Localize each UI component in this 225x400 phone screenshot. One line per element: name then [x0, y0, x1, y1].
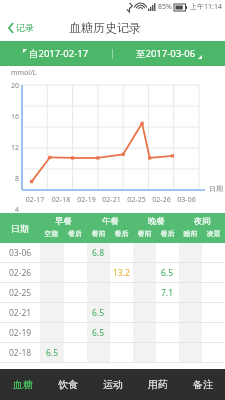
- staticText: 02-26: [9, 267, 32, 279]
- staticText: 餐前: [87, 229, 110, 238]
- staticText: 睡前: [179, 229, 202, 238]
- staticText: 02-21: [9, 307, 32, 319]
- button[interactable]: 03-06: [0, 243, 225, 262]
- staticText: 6.8: [92, 247, 105, 259]
- button[interactable]: 血糖: [0, 369, 45, 400]
- staticText: 20: [7, 81, 19, 91]
- staticText: 4: [7, 205, 19, 215]
- staticText: 0: [7, 236, 19, 246]
- button[interactable]: 02-18: [0, 343, 225, 362]
- staticText: 16: [7, 112, 19, 122]
- staticText: 空腹: [40, 229, 63, 238]
- staticText: mmol/L: [11, 68, 37, 78]
- staticText: 用药: [148, 378, 168, 391]
- staticText: 午餐: [102, 216, 119, 227]
- staticText: 12: [7, 143, 19, 153]
- staticText: 03-06: [9, 247, 32, 259]
- staticText: 02-19: [74, 195, 99, 205]
- button[interactable]: 自2017-02-17: [0, 41, 112, 66]
- staticText: 7.1: [161, 287, 174, 299]
- staticText: 日期: [209, 184, 223, 193]
- staticText: 餐前: [133, 229, 156, 238]
- staticText: 日期: [11, 223, 29, 234]
- staticText: 备注: [193, 378, 213, 391]
- staticText: 02-17: [22, 195, 48, 205]
- staticText: 6.5: [92, 307, 105, 319]
- button[interactable]: 02-25: [0, 283, 225, 302]
- staticText: 夜间: [194, 216, 211, 227]
- staticText: 02-26: [149, 195, 174, 205]
- staticText: 02-18: [48, 195, 74, 205]
- button[interactable]: 用药: [135, 369, 180, 400]
- button[interactable]: 02-26: [0, 263, 225, 282]
- staticText: 凌晨: [202, 229, 225, 238]
- staticText: 运动: [103, 378, 123, 391]
- staticText: 85%: [158, 2, 172, 12]
- staticText: 13.2: [113, 267, 130, 279]
- staticText: 上午11:14: [190, 2, 222, 12]
- staticText: 02-21: [99, 195, 124, 205]
- button[interactable]: 02-21: [0, 303, 225, 322]
- staticText: 饮食: [58, 378, 78, 391]
- staticText: 02-25: [124, 195, 149, 205]
- staticText: 餐后: [110, 229, 133, 238]
- staticText: 至2017-03-06: [136, 47, 196, 60]
- staticText: 6.5: [161, 267, 174, 279]
- staticText: 6.5: [92, 327, 105, 339]
- button[interactable]: 至2017-03-06: [113, 41, 225, 66]
- staticText: 03-06: [174, 195, 199, 205]
- staticText: 02-19: [9, 327, 32, 339]
- staticText: 餐后: [63, 229, 87, 238]
- staticText: 晚餐: [148, 216, 165, 227]
- staticText: 02-18: [9, 347, 32, 359]
- staticText: 记录: [16, 22, 34, 33]
- staticText: 餐后: [156, 229, 179, 238]
- button[interactable]: 记录: [6, 18, 36, 37]
- staticText: 血糖: [13, 378, 33, 391]
- button[interactable]: 备注: [180, 369, 225, 400]
- button[interactable]: 运动: [90, 369, 135, 400]
- button[interactable]: 饮食: [45, 369, 90, 400]
- staticText: 02-25: [9, 287, 32, 299]
- button[interactable]: 02-19: [0, 323, 225, 342]
- staticText: 6.5: [46, 347, 59, 359]
- staticText: 血糖历史记录: [69, 20, 141, 35]
- staticText: 8: [7, 174, 19, 184]
- staticText: 自2017-02-17: [29, 47, 89, 60]
- staticText: 早餐: [55, 216, 72, 227]
